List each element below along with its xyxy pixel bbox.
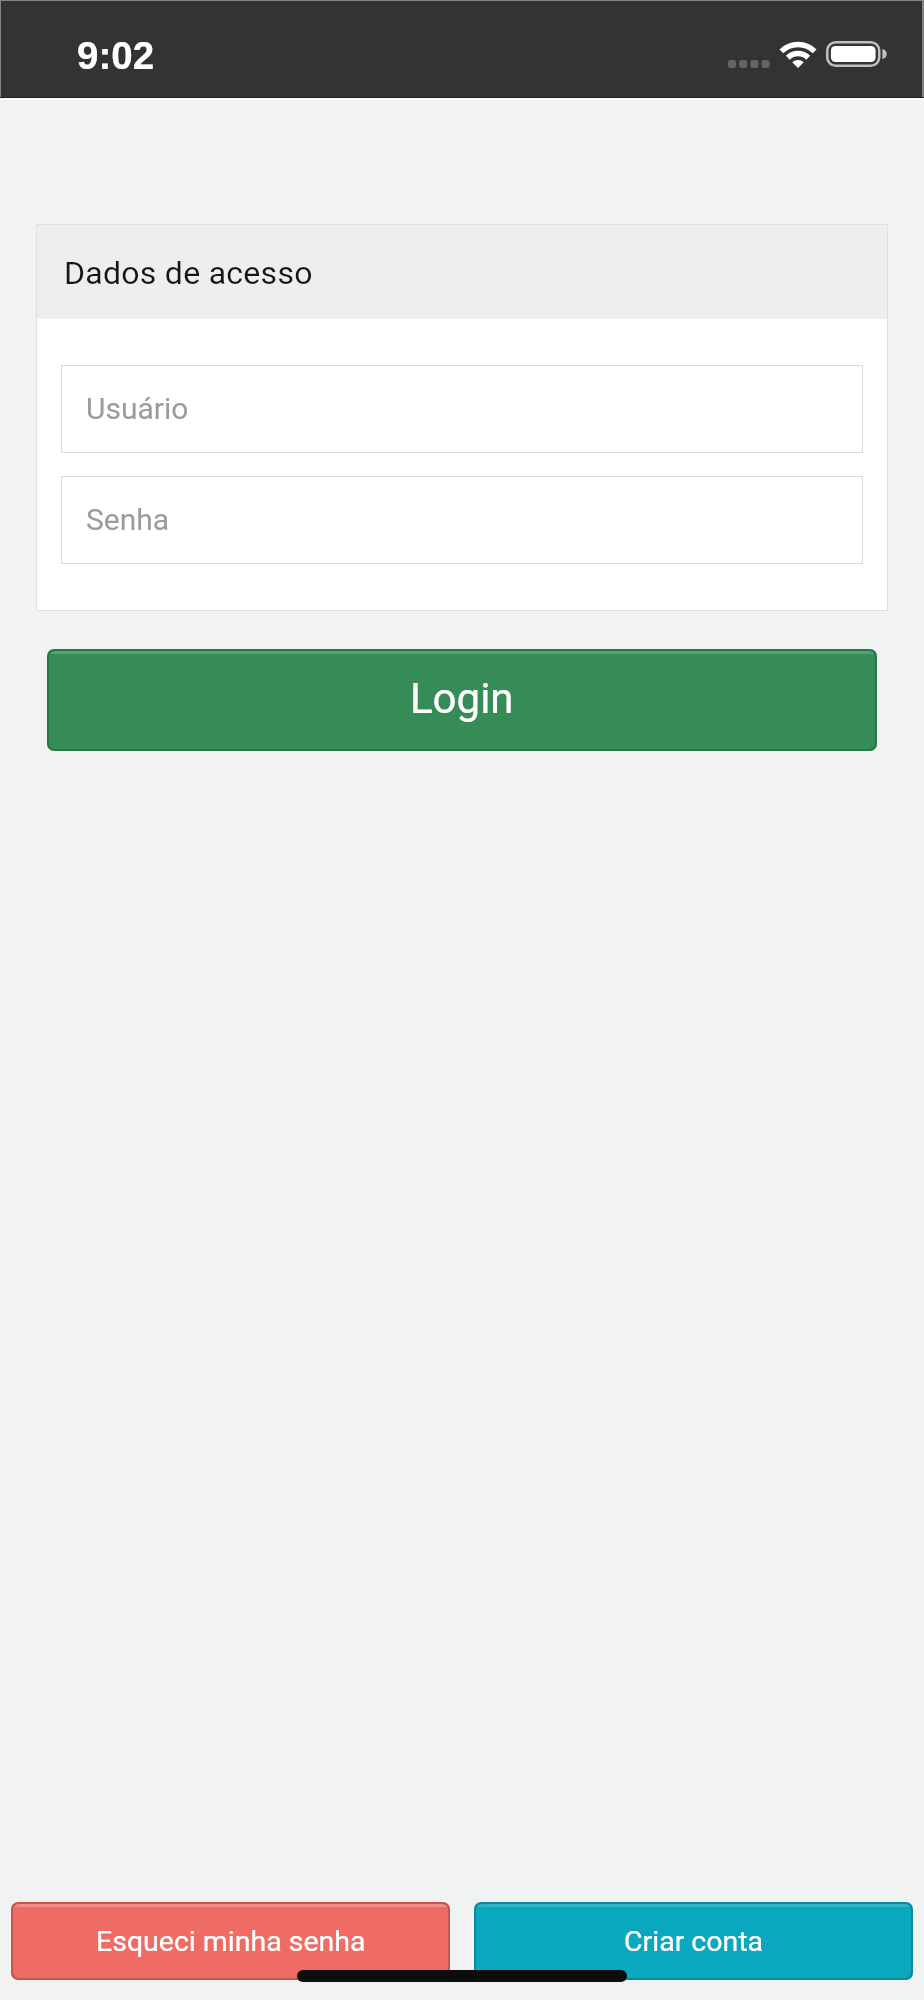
staticText: Login [410, 674, 514, 723]
staticText: Usuário [86, 391, 189, 426]
staticText: Dados de acesso [64, 254, 313, 292]
staticText: 9:02 [77, 34, 155, 77]
other: Battery full [826, 41, 886, 68]
button[interactable]: Esqueci minha senha [13, 1904, 448, 1978]
other: Wi-Fi connected [779, 41, 817, 68]
staticText: Criar conta [624, 1925, 764, 1958]
other: Mobile signal [728, 60, 770, 68]
staticText: Esqueci minha senha [96, 1925, 366, 1958]
button[interactable]: Usuário [86, 365, 863, 453]
button[interactable]: Senha [86, 476, 863, 564]
button[interactable]: Criar conta [476, 1904, 911, 1978]
button[interactable]: Login [49, 651, 875, 749]
staticText: Senha [86, 502, 170, 537]
